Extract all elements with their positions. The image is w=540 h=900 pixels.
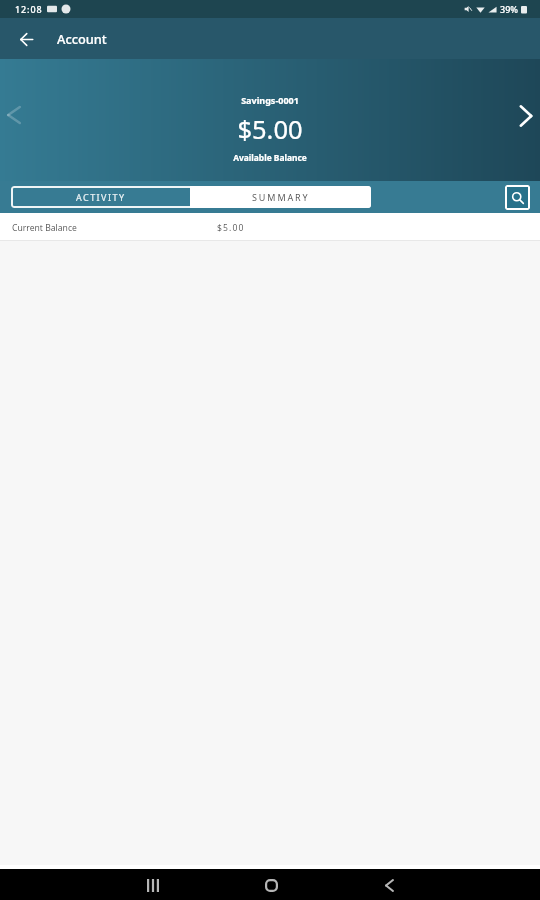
staticText: $5.00 (217, 222, 245, 234)
button[interactable]: Back (367, 870, 411, 900)
button[interactable]: Current Balance (0, 213, 540, 241)
button[interactable]: Back (12, 25, 40, 53)
button[interactable]: Previous account (0, 101, 28, 129)
button[interactable]: Home (249, 870, 293, 900)
staticText: Available Balance (233, 152, 307, 163)
staticText: 12:08 (15, 3, 43, 15)
staticText: Account (57, 30, 107, 47)
staticText: 39% (500, 3, 518, 15)
staticText: Savings-0001 (241, 94, 299, 106)
staticText: Current Balance (12, 222, 77, 234)
button[interactable]: SUMMARY (190, 186, 371, 208)
button[interactable]: ACTIVITY (11, 186, 190, 208)
staticText: SUMMARY (252, 191, 310, 203)
button[interactable]: Recents (131, 870, 175, 900)
staticText: $5.00 (237, 112, 303, 147)
button[interactable]: Next account (512, 102, 540, 130)
staticText: ACTIVITY (76, 191, 126, 203)
button[interactable]: Search (505, 185, 530, 210)
